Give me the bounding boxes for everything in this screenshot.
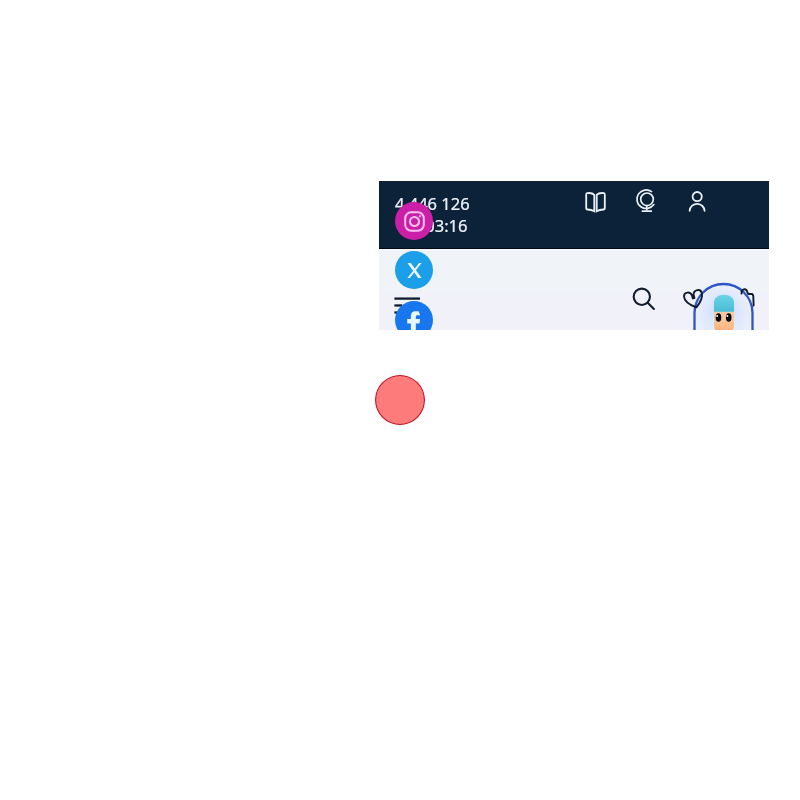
button[interactable]: Language (635, 190, 658, 213)
button[interactable]: Share on X (395, 251, 433, 289)
button[interactable]: Profile avatar (690, 280, 756, 330)
button[interactable]: Search (633, 288, 655, 310)
button[interactable]: Share on Instagram (395, 202, 433, 240)
button[interactable]: Profile (688, 190, 707, 212)
staticText: 4 446 126 (395, 192, 470, 214)
button[interactable]: Share on Facebook (395, 301, 433, 330)
button[interactable]: Menu (394, 297, 420, 313)
button[interactable]: Compose (375, 375, 425, 425)
button[interactable]: Library (584, 191, 607, 212)
staticText: 10:03:16 (402, 214, 468, 236)
